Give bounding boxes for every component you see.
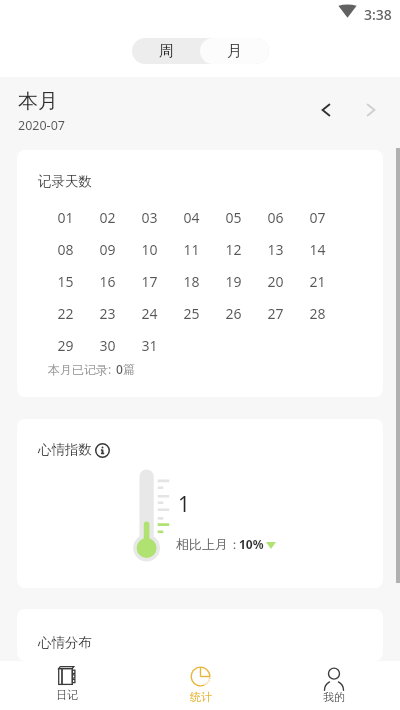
staticText: 1 [178,490,191,519]
staticText: 29 [57,336,74,355]
staticText: 0 [116,361,123,377]
staticText: 12 [225,240,242,259]
button[interactable]: 心情指数 [17,419,383,588]
staticText: 周 [159,42,174,61]
staticText: 08 [57,240,74,259]
staticText: 09 [99,240,116,259]
staticText: 28 [309,304,326,323]
staticText: 22 [57,304,74,323]
staticText: 篇 [123,361,135,376]
staticText: 07 [309,208,326,227]
button[interactable]: 日记 [0,661,134,710]
button[interactable]: 月 [200,38,269,64]
staticText: 14 [309,240,326,259]
button[interactable]: 记录天数 [17,150,383,397]
staticText: 17 [141,272,158,291]
button[interactable]: 心情分布 [17,609,383,661]
staticText: 本月 [18,89,58,114]
staticText: 本月已记录: [48,361,112,377]
staticText: 31 [141,336,158,355]
staticText: 16 [99,272,116,291]
staticText: 03 [141,208,158,227]
staticText: 05 [225,208,242,227]
staticText: 19 [225,272,242,291]
button[interactable]: 我的 [267,661,400,710]
staticText: 日记 [56,688,78,702]
staticText: 26 [225,304,242,323]
staticText: 01 [57,208,74,227]
staticText: 06 [267,208,284,227]
staticText: 10% [239,536,264,552]
staticText: 18 [183,272,200,291]
button[interactable]: Next month [357,96,385,124]
staticText: 13 [267,240,284,259]
button[interactable]: Previous month [312,96,340,124]
staticText: 月 [227,42,242,61]
staticText: 23 [99,304,116,323]
staticText: 21 [309,272,326,291]
staticText: 记录天数 [38,173,92,190]
staticText: 我的 [323,690,345,704]
staticText: 10 [141,240,158,259]
staticText: 心情分布 [38,634,92,651]
button[interactable]: 周 [132,38,200,64]
staticText: 20 [267,272,284,291]
staticText: 24 [141,304,158,323]
staticText: 02 [99,208,116,227]
button[interactable]: 统计 [134,661,267,710]
staticText: 15 [57,272,74,291]
staticText: 统计 [190,690,212,704]
staticText: 心情指数 [38,441,92,458]
staticText: 25 [183,304,200,323]
staticText: 27 [267,304,284,323]
staticText: 30 [99,336,116,355]
staticText: 04 [183,208,200,227]
staticText: 11 [183,240,200,259]
staticText: 3:38 [364,5,392,24]
staticText: 2020-07 [18,117,65,134]
staticText: 相比上月： [176,536,241,552]
